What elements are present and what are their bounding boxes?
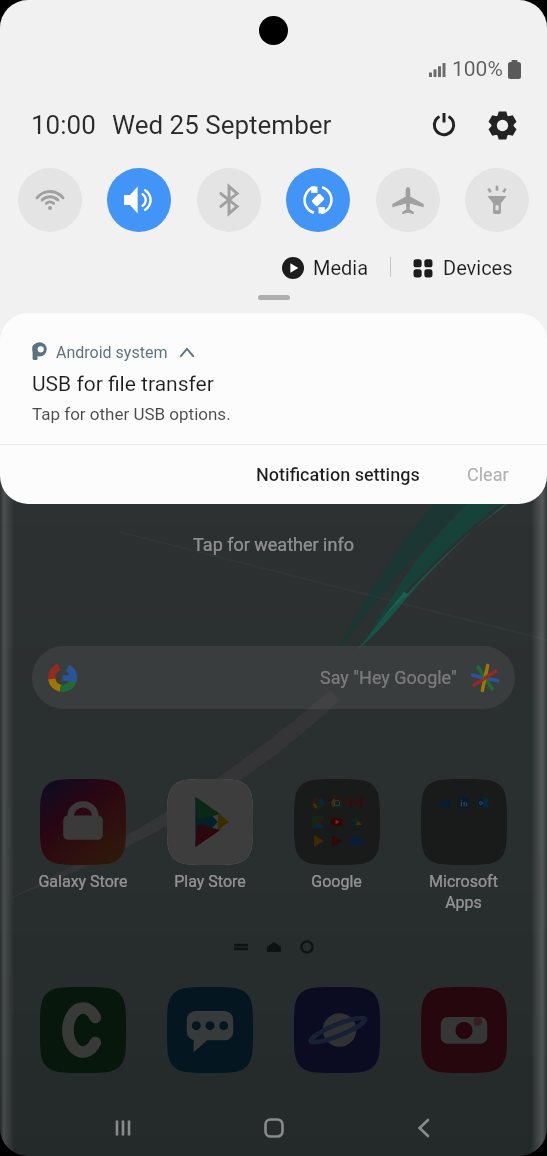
staticText: Play Store bbox=[174, 872, 246, 891]
button[interactable]: Settings bbox=[483, 106, 521, 144]
button[interactable]: Power bbox=[425, 106, 463, 144]
button[interactable]: Clear bbox=[457, 454, 519, 495]
button[interactable]: Internet bbox=[273, 987, 400, 1073]
button[interactable]: Sound bbox=[107, 168, 171, 232]
staticText: Galaxy Store bbox=[38, 872, 128, 891]
staticText: Tap for weather info bbox=[0, 534, 547, 555]
button[interactable]: Messages bbox=[146, 987, 273, 1073]
staticText: Say "Hey Google" bbox=[320, 667, 457, 688]
button[interactable]: Android system bbox=[32, 340, 547, 364]
staticText: 10:00 bbox=[31, 110, 96, 140]
staticText: Media bbox=[313, 256, 369, 279]
staticText: USB for file transfer bbox=[32, 372, 214, 397]
button[interactable]: Say "Hey Google" bbox=[32, 646, 515, 709]
staticText: Notification settings bbox=[256, 464, 420, 485]
button[interactable]: Back bbox=[396, 1100, 452, 1156]
staticText: Google bbox=[311, 872, 362, 891]
button[interactable]: Recents bbox=[95, 1100, 151, 1156]
staticText: 100% bbox=[452, 57, 503, 82]
button[interactable]: Play Store bbox=[146, 779, 273, 891]
staticText: Android system bbox=[56, 343, 168, 362]
button[interactable]: Wi-Fi bbox=[18, 168, 82, 232]
button[interactable]: Notification settings bbox=[246, 454, 430, 495]
button[interactable]: Phone bbox=[19, 987, 146, 1073]
staticText: Tap for other USB options. bbox=[32, 404, 231, 424]
button[interactable]: Camera bbox=[400, 987, 527, 1073]
button[interactable]: Flight mode bbox=[376, 168, 440, 232]
button[interactable]: Galaxy Store bbox=[19, 779, 146, 891]
button[interactable]: Flashlight bbox=[465, 168, 529, 232]
button[interactable]: Microsoft Apps bbox=[400, 779, 527, 912]
button[interactable]: Google bbox=[273, 779, 400, 891]
button[interactable]: Bluetooth bbox=[197, 168, 261, 232]
button[interactable]: Devices bbox=[408, 252, 517, 283]
button[interactable]: Home bbox=[246, 1100, 302, 1156]
staticText: Wed 25 September bbox=[112, 110, 332, 140]
staticText: Clear bbox=[467, 464, 509, 485]
button[interactable]: Auto rotate bbox=[286, 168, 350, 232]
staticText: Devices bbox=[443, 256, 513, 279]
staticText: Microsoft Apps bbox=[429, 872, 498, 912]
button[interactable]: Media bbox=[278, 252, 373, 283]
